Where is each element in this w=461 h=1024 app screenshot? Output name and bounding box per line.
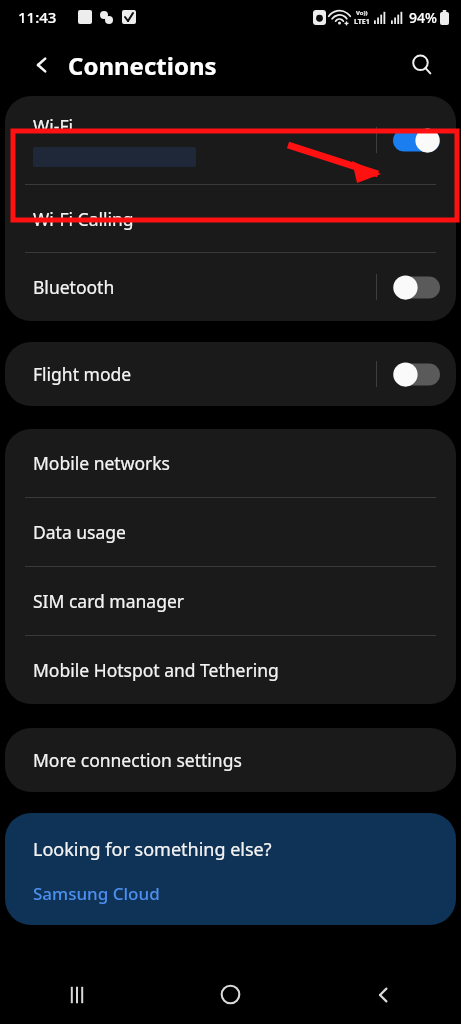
button[interactable]: Search [401, 44, 443, 86]
button[interactable]: SIM card manager [5, 567, 456, 635]
button[interactable]: Toggle on [393, 128, 440, 153]
staticText: LTE1 [354, 17, 370, 27]
staticText: 94% [409, 8, 437, 27]
button[interactable]: Flight mode [5, 342, 456, 406]
button[interactable]: Samsung Cloud [33, 882, 160, 905]
staticText: Bluetooth [33, 275, 115, 299]
button[interactable]: Looking for something else? [5, 813, 456, 925]
staticText: 11:43 [18, 7, 57, 27]
button[interactable]: Toggle off [393, 362, 440, 387]
button[interactable]: Mobile networks [5, 429, 456, 497]
staticText: Mobile networks [33, 451, 170, 475]
button[interactable]: Bluetooth [5, 253, 456, 321]
button[interactable]: Recent apps [0, 965, 153, 1024]
staticText: Looking for something else? [33, 837, 272, 862]
staticText: Vo)) [356, 9, 368, 17]
button[interactable]: Toggle off [393, 275, 440, 300]
button[interactable]: Back [22, 45, 62, 85]
staticText: SIM card manager [33, 589, 185, 613]
staticText: Flight mode [33, 362, 132, 386]
button[interactable]: Home [153, 965, 307, 1024]
staticText: Connections [68, 49, 217, 82]
button[interactable]: Back [307, 965, 461, 1024]
staticText: More connection settings [33, 748, 242, 772]
staticText: Wi-Fi [33, 114, 74, 138]
staticText: Mobile Hotspot and Tethering [33, 658, 279, 682]
button[interactable]: Data usage [5, 498, 456, 566]
staticText: Wi-Fi Calling [33, 207, 134, 231]
button[interactable]: Mobile Hotspot and Tethering [5, 636, 456, 704]
button[interactable]: Wi-Fi Calling [5, 185, 456, 252]
staticText: Data usage [33, 520, 126, 544]
button[interactable]: More connection settings [5, 728, 456, 792]
button[interactable]: Wi-Fi [5, 96, 456, 184]
